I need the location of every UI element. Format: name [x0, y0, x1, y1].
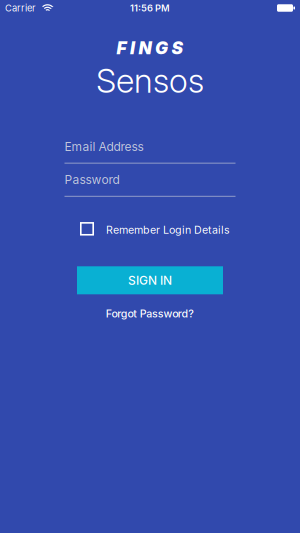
- staticText: Forgot Password?: [106, 307, 194, 320]
- staticText: Remember Login Details: [106, 223, 230, 236]
- staticText: FINGS: [116, 38, 183, 58]
- button[interactable]: SIGN IN: [77, 266, 223, 294]
- button[interactable]: Forgot Password?: [106, 307, 194, 320]
- button[interactable]: Remember Login Details: [64, 222, 235, 236]
- staticText: 11:56 PM: [130, 2, 170, 13]
- staticText: Carrier: [5, 2, 36, 13]
- staticText: SIGN IN: [128, 273, 172, 287]
- button[interactable]: Password: [64, 173, 235, 197]
- staticText: Email Address: [64, 139, 143, 154]
- staticText: Sensos: [96, 61, 204, 100]
- staticText: Password: [64, 173, 119, 187]
- button[interactable]: Email Address: [64, 139, 235, 164]
